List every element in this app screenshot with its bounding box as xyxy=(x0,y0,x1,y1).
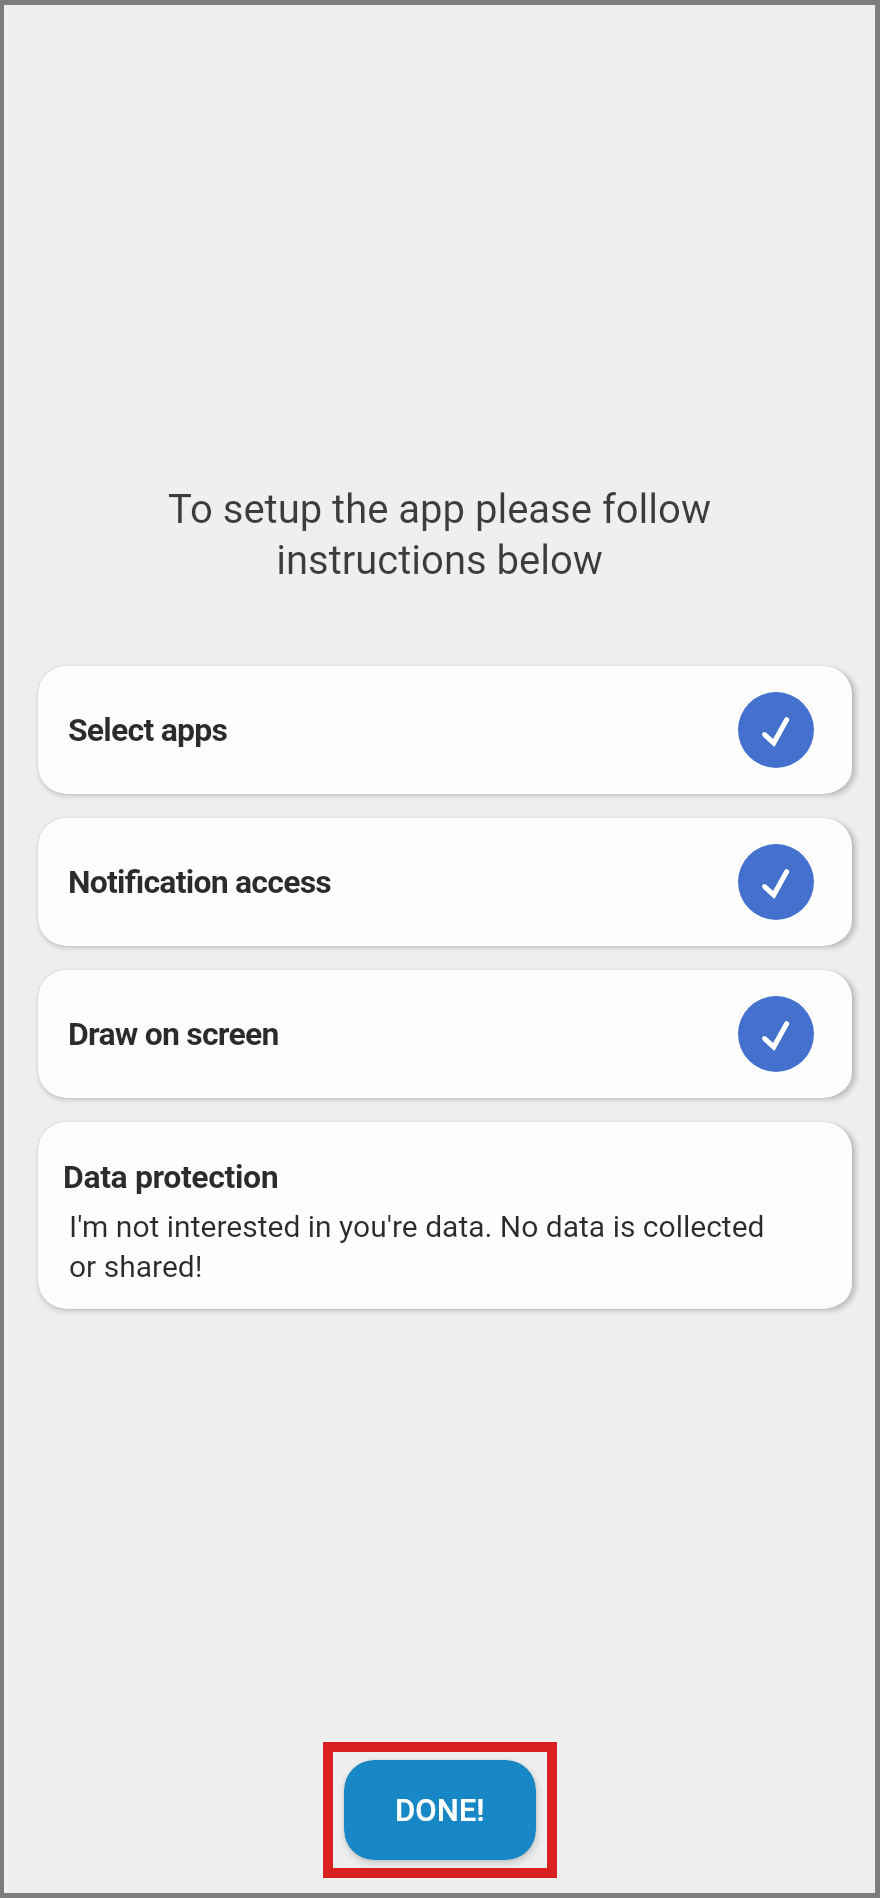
staticText: To setup the app please follow instructi… xyxy=(4,486,875,583)
button[interactable]: Notification access xyxy=(38,818,852,946)
staticText: DONE! xyxy=(395,1792,485,1828)
button[interactable]: DONE! xyxy=(344,1760,536,1860)
staticText: Data protection xyxy=(63,1158,279,1196)
button[interactable]: Draw on screen xyxy=(38,970,852,1098)
button[interactable]: Data protection xyxy=(38,1122,852,1309)
staticText: I'm not interested in you're data. No da… xyxy=(69,1209,765,1284)
staticText: Draw on screen xyxy=(68,1015,279,1053)
staticText: Notification access xyxy=(68,863,332,901)
button[interactable]: Select apps xyxy=(38,666,852,794)
staticText: Select apps xyxy=(68,711,228,749)
